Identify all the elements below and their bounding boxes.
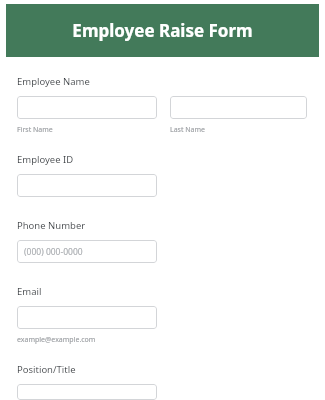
staticText: example@example.com [17,335,96,345]
button[interactable] [17,174,157,197]
staticText: First Name [17,125,53,135]
button[interactable]: (000) 000-0000 [17,240,157,263]
button[interactable] [17,96,157,119]
button[interactable] [17,306,157,329]
staticText: (000) 000-0000 [24,246,83,258]
staticText: Position/Title [17,363,76,376]
staticText: Phone Number [17,219,86,232]
staticText: Last Name [170,125,206,135]
staticText: Email [17,285,42,298]
staticText: Employee Raise Form [72,19,253,42]
staticText: Employee Name [17,75,90,88]
staticText: Employee ID [17,153,74,166]
button[interactable] [17,384,157,400]
button[interactable] [170,96,307,119]
